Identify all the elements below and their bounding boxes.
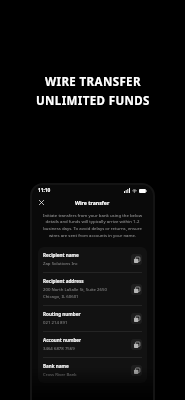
staticText: Initiate transfers from your bank using … xyxy=(41,212,144,238)
staticText: 3464 6878 7569 xyxy=(43,345,75,351)
staticText: Wire transfer xyxy=(75,199,110,206)
staticText: Routing number xyxy=(43,311,81,317)
button[interactable]: Recipient address xyxy=(38,273,147,305)
staticText: 021 214 891 xyxy=(43,319,68,325)
staticText: 200 North LaSalle St, Suite 2650 xyxy=(43,286,107,292)
button[interactable]: Close xyxy=(37,198,46,207)
staticText: Cross River Bank xyxy=(43,371,77,377)
staticText: 11:10 xyxy=(38,187,51,194)
staticText: Account number xyxy=(43,337,82,343)
button[interactable]: Account number xyxy=(38,332,147,357)
staticText: Recipient address xyxy=(43,278,84,284)
button[interactable]: Copy xyxy=(131,339,142,350)
button[interactable]: Copy xyxy=(131,313,142,324)
button[interactable]: Bank name xyxy=(38,358,147,383)
staticText: Chicago, IL 60601 xyxy=(43,293,79,299)
button[interactable]: Routing number xyxy=(38,306,147,331)
staticText: WIRE TRANSFER xyxy=(45,74,141,90)
button[interactable]: Copy xyxy=(131,365,142,376)
staticText: Zap Solutions Inc xyxy=(43,260,78,266)
staticText: Bank name xyxy=(43,363,69,369)
staticText: UNLIMITED FUNDS xyxy=(36,93,150,109)
button[interactable]: Recipient name xyxy=(38,247,147,272)
button[interactable]: Copy xyxy=(131,284,142,295)
button[interactable]: Copy xyxy=(131,254,142,265)
staticText: Recipient name xyxy=(43,252,79,258)
